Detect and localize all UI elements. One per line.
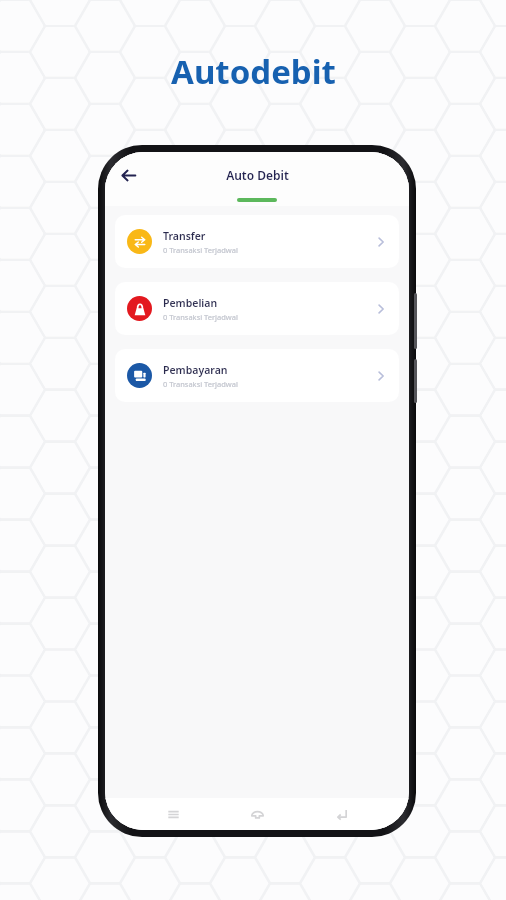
- button[interactable]: Home: [241, 798, 273, 830]
- staticText: 0 Transaksi Terjadwal: [163, 245, 238, 255]
- staticText: Pembelian: [163, 296, 218, 310]
- staticText: 0 Transaksi Terjadwal: [163, 379, 238, 389]
- button[interactable]: Back: [325, 798, 357, 830]
- button[interactable]: Transfer: [115, 215, 399, 268]
- button[interactable]: Pembelian: [115, 282, 399, 335]
- staticText: Transfer: [163, 229, 206, 243]
- staticText: 0 Transaksi Terjadwal: [163, 312, 238, 322]
- button[interactable]: Back: [113, 160, 143, 190]
- staticText: Autodebit: [171, 49, 336, 94]
- button[interactable]: Pembayaran: [115, 349, 399, 402]
- button[interactable]: Menu: [157, 798, 189, 830]
- staticText: Pembayaran: [163, 363, 228, 377]
- staticText: Auto Debit: [226, 167, 289, 183]
